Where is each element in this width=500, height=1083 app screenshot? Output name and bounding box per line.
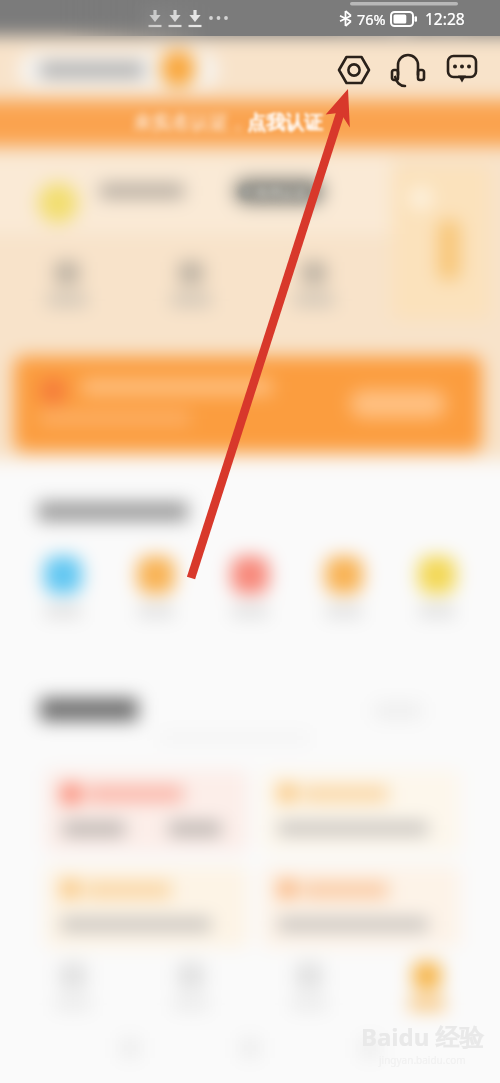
- button[interactable]: [14, 356, 482, 452]
- button[interactable]: Messages: [442, 47, 482, 87]
- button[interactable]: [382, 957, 472, 1010]
- button[interactable]: [125, 556, 187, 617]
- button[interactable]: Customer service: [388, 49, 428, 89]
- button[interactable]: [38, 183, 78, 223]
- button[interactable]: Coins: [160, 51, 196, 87]
- button[interactable]: [129, 262, 252, 306]
- button[interactable]: [45, 866, 248, 948]
- button[interactable]: Scan: [334, 49, 374, 89]
- staticText: 未实名认证，: [133, 111, 247, 135]
- button[interactable]: [45, 770, 248, 852]
- staticText: 未实名认证，: [133, 111, 247, 135]
- button[interactable]: [264, 957, 354, 1010]
- staticText: 12:28: [425, 8, 465, 29]
- button[interactable]: [234, 179, 324, 204]
- staticText: 76%: [357, 9, 386, 29]
- button[interactable]: [32, 556, 94, 617]
- staticText: 信用认证: [255, 184, 307, 200]
- button[interactable]: [262, 770, 460, 852]
- staticText: Baidu 经验: [361, 1020, 484, 1053]
- button[interactable]: [406, 556, 468, 617]
- button[interactable]: [5, 262, 129, 306]
- button[interactable]: [313, 556, 375, 617]
- button[interactable]: [252, 262, 375, 306]
- button[interactable]: [146, 957, 236, 1010]
- staticText: 12:28: [425, 8, 465, 29]
- button[interactable]: [0, 100, 500, 146]
- button[interactable]: [219, 556, 281, 617]
- button[interactable]: [28, 957, 118, 1010]
- staticText: 76%: [357, 9, 386, 29]
- staticText: jingyan.baidu.com: [379, 1053, 466, 1067]
- staticText: 点我认证: [247, 111, 323, 135]
- staticText: 点我认证: [247, 111, 323, 135]
- button[interactable]: [18, 52, 218, 88]
- button[interactable]: [262, 866, 460, 948]
